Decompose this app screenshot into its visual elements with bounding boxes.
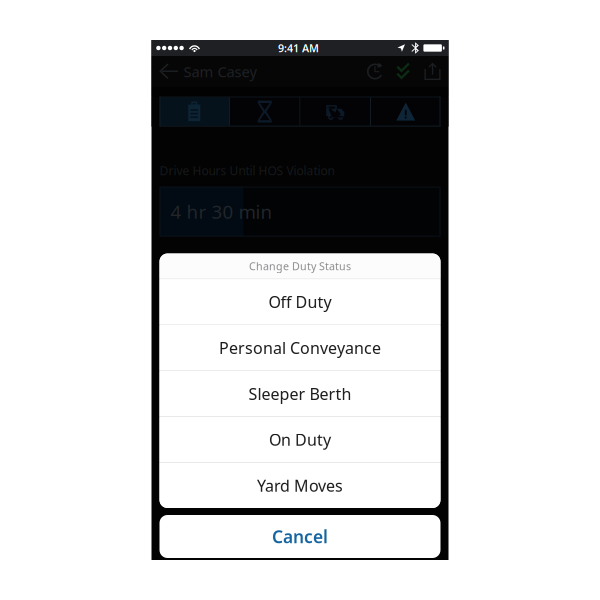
button[interactable]: Refresh xyxy=(364,56,385,87)
staticText: Sam Casey xyxy=(183,62,256,81)
staticText: On Duty xyxy=(269,429,331,450)
staticText: Personal Conveyance xyxy=(219,337,381,358)
button[interactable]: Share xyxy=(423,56,441,87)
button[interactable]: Off Duty xyxy=(159,279,440,324)
button[interactable]: Logs xyxy=(159,98,229,126)
button[interactable]: Sleeper Berth xyxy=(159,371,440,416)
button[interactable]: Certify xyxy=(394,56,414,87)
button[interactable]: Personal Conveyance xyxy=(159,325,440,370)
button[interactable]: Hours xyxy=(230,98,299,126)
staticText: Cancel xyxy=(272,525,328,548)
staticText: Off Duty xyxy=(268,291,331,312)
button[interactable]: Yard Moves xyxy=(159,463,440,508)
staticText: Yard Moves xyxy=(257,475,343,496)
button[interactable]: Sam Casey xyxy=(158,56,261,87)
staticText: 9:41 AM xyxy=(278,41,319,55)
staticText: Drive Hours Until HOS Violation xyxy=(159,163,334,178)
staticText: 4 hr 30 min xyxy=(170,199,272,224)
button[interactable]: Alerts xyxy=(371,98,440,126)
button[interactable]: Cancel xyxy=(151,515,448,558)
button[interactable]: Vehicle xyxy=(300,98,370,126)
staticText: Sleeper Berth xyxy=(248,383,351,404)
button[interactable]: On Duty xyxy=(159,417,440,462)
staticText: Change Duty Status xyxy=(249,259,351,273)
